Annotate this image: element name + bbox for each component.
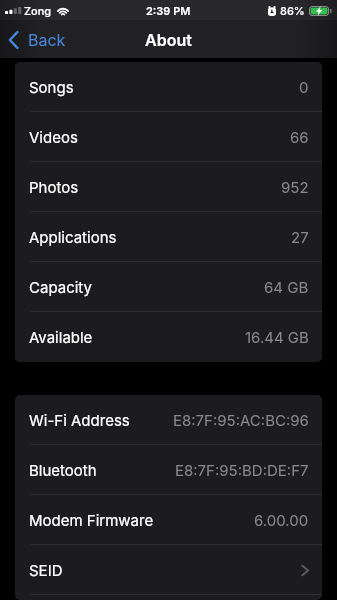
staticText: Photos	[29, 178, 79, 196]
staticText: Capacity	[29, 278, 92, 296]
staticText: 2:39 PM	[146, 4, 191, 17]
staticText: E8:7F:95:BD:DE:F7	[175, 461, 309, 479]
staticText: 16.44 GB	[245, 328, 309, 346]
staticText: 952	[281, 178, 309, 196]
button[interactable]: Applications	[15, 212, 322, 262]
staticText: 64 GB	[264, 278, 309, 296]
staticText: 27	[291, 228, 309, 246]
button[interactable]: Bluetooth	[15, 445, 322, 495]
staticText: Bluetooth	[29, 461, 97, 479]
staticText: Available	[29, 328, 93, 346]
staticText: Zong	[24, 4, 52, 17]
button[interactable]: Photos	[15, 162, 322, 212]
other: Back	[8, 31, 19, 49]
button[interactable]: Videos	[15, 112, 322, 162]
staticText: Applications	[29, 228, 117, 246]
staticText: Songs	[29, 78, 74, 96]
staticText: About	[145, 30, 192, 49]
button[interactable]: Available	[15, 312, 322, 362]
staticText: Wi-Fi Address	[29, 411, 130, 429]
button[interactable]: Capacity	[15, 262, 322, 312]
button[interactable]: SEID	[15, 545, 322, 595]
button[interactable]: Back	[0, 26, 74, 53]
button[interactable]: Songs	[15, 62, 322, 112]
staticText: Modem Firmware	[29, 511, 154, 529]
staticText: 86%	[280, 4, 305, 17]
button[interactable]: Wi-Fi Address	[15, 395, 322, 445]
staticText: Videos	[29, 128, 78, 146]
staticText: SEID	[29, 561, 63, 579]
staticText: Back	[28, 30, 66, 49]
button[interactable]: Modem Firmware	[15, 495, 322, 545]
staticText: E8:7F:95:AC:BC:96	[173, 411, 309, 429]
staticText: 66	[290, 128, 309, 146]
staticText: 0	[299, 78, 309, 96]
staticText: 6.00.00	[254, 511, 309, 529]
